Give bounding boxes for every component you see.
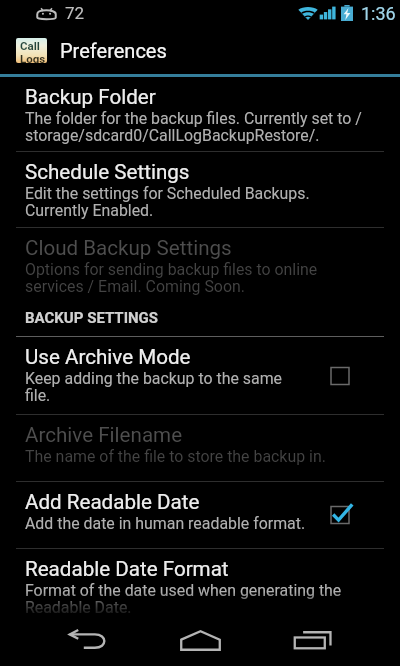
staticText: Format of the date used when generating … <box>25 581 370 614</box>
button[interactable]: Recent apps <box>270 614 355 666</box>
staticText: Cloud Backup Settings <box>25 236 232 260</box>
staticText: Add the date in human readable format. <box>25 514 306 533</box>
button[interactable]: Home <box>158 614 243 666</box>
button[interactable]: Use Archive Mode <box>0 337 400 414</box>
button[interactable]: Readable Date Format <box>0 549 400 614</box>
staticText: Edit the settings for Scheduled Backups.… <box>25 184 370 220</box>
button[interactable]: Cloud Backup Settings <box>0 228 400 303</box>
staticText: Keep adding the backup to the same file. <box>25 369 307 405</box>
staticText: BACKUP SETTINGS <box>25 309 159 327</box>
button[interactable]: Add Readable Date <box>0 482 400 548</box>
staticText: The name of the file to store the backup… <box>25 447 326 466</box>
button[interactable]: Use Archive Mode <box>308 337 372 414</box>
staticText: 1:36 <box>361 3 396 24</box>
staticText: Use Archive Mode <box>25 345 191 369</box>
staticText: The folder for the backup files. Current… <box>25 109 370 145</box>
staticText: Logs <box>20 52 46 63</box>
button[interactable]: Add Readable Date <box>308 482 372 548</box>
button[interactable]: Backup Folder <box>0 77 400 151</box>
staticText: Add Readable Date <box>25 490 200 514</box>
staticText: Call <box>20 39 40 52</box>
staticText: Options for sending backup files to onli… <box>25 260 370 296</box>
button[interactable]: Back <box>45 614 130 666</box>
staticText: 72 <box>65 3 85 23</box>
button[interactable]: Archive Filename <box>0 415 400 481</box>
staticText: Schedule Settings <box>25 160 190 184</box>
staticText: Preferences <box>60 39 167 62</box>
staticText: Archive Filename <box>25 423 183 447</box>
staticText: Readable Date Format <box>25 557 229 581</box>
staticText: Backup Folder <box>25 85 156 109</box>
button[interactable]: Schedule Settings <box>0 152 400 227</box>
